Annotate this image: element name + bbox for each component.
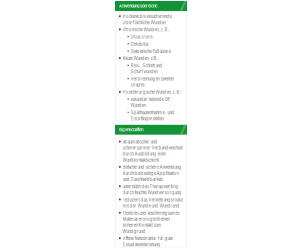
staticText: Spalthautentnahme- und [131, 110, 175, 115]
staticText: Empfängerstellen [131, 116, 164, 121]
staticText: Grades [131, 82, 145, 88]
staticText: und Zuschneidbarkeit [122, 177, 162, 182]
staticText: offene Netzstruktur für gute [122, 236, 172, 241]
staticText: Diabetische Fußulzera [131, 49, 171, 54]
staticText: Verbrennungen zweiten [131, 76, 174, 81]
staticText: Schürfwunden [131, 69, 158, 74]
staticText: durch Ausbildung einer [122, 151, 166, 157]
staticText: Postchirurgische Wunden, z. B.: [122, 90, 181, 95]
staticText: Ulcus cruris [131, 34, 153, 39]
staticText: Wundgrund [122, 229, 145, 234]
staticText: sekundär heilende OP [131, 97, 171, 102]
staticText: Wunden [131, 103, 146, 108]
staticText: Wundkontaktschicht [122, 158, 158, 163]
staticText: Riss-, Schnitt und [131, 63, 163, 68]
staticText: Akute Wunden, z.B.: [122, 56, 158, 61]
staticText: schmerzarmer Verbandwechsel [122, 145, 182, 150]
staticText: mit der Wunde und Wundrand [122, 203, 179, 208]
staticText: chronische Wunden, z. B.: [122, 27, 169, 32]
staticText: trockene bis exsudierende, [122, 14, 172, 19]
staticText: Exsudatweiterleitung [122, 242, 160, 247]
staticText: durch beidseitige Applikation [122, 171, 178, 176]
staticText: Anwendungsbereiche [119, 4, 157, 8]
staticText: durch feuchte Wundversorgung [122, 190, 181, 195]
staticText: reduziert das Verklebungsrisiko [122, 197, 183, 202]
staticText: sicheren Kontakt zum [122, 223, 161, 228]
staticText: oberflächliche Wunden [122, 20, 165, 25]
staticText: einfache und sichere Anwendung [122, 165, 181, 170]
staticText: unterstützt den Therapieerfolg [122, 184, 178, 189]
staticText: flexibles und anschmiegsames [122, 211, 179, 216]
staticText: atraumatischer und [122, 139, 157, 144]
staticText: Material ermöglicht einen [122, 217, 169, 222]
staticText: Eigenschaften [119, 127, 143, 132]
staticText: Dekubitus [131, 42, 149, 47]
